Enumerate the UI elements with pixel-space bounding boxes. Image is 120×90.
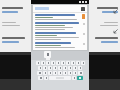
button[interactable]: Key xyxy=(66,61,70,65)
button[interactable] xyxy=(33,21,87,31)
button[interactable]: Key xyxy=(43,66,47,70)
button[interactable]: Enter xyxy=(77,76,83,80)
button[interactable]: Key xyxy=(56,61,60,65)
button[interactable]: Key xyxy=(53,66,57,70)
button[interactable]: Bookmark xyxy=(82,14,85,19)
button[interactable]: Key xyxy=(53,71,57,75)
button[interactable]: Key xyxy=(48,71,52,75)
button[interactable]: Options xyxy=(33,5,87,12)
button[interactable]: Key xyxy=(73,71,77,75)
button[interactable]: Key xyxy=(73,66,77,70)
button[interactable] xyxy=(33,41,87,49)
button[interactable]: Key xyxy=(81,61,85,65)
button[interactable]: Key xyxy=(63,71,67,75)
button[interactable]: Shift xyxy=(37,71,42,75)
button[interactable]: Period xyxy=(72,76,76,80)
button[interactable]: Key xyxy=(58,71,62,75)
button[interactable]: Key xyxy=(48,66,52,70)
button[interactable]: Comma xyxy=(44,76,48,80)
button[interactable]: Key xyxy=(36,61,40,65)
button[interactable]: Space xyxy=(49,76,71,80)
button[interactable]: Key xyxy=(41,61,45,65)
button[interactable]: Expand xyxy=(112,8,119,15)
button[interactable]: Symbols xyxy=(38,76,43,80)
button[interactable]: Key xyxy=(51,61,55,65)
button[interactable]: Options xyxy=(81,7,85,11)
button[interactable]: Key xyxy=(43,71,47,75)
button[interactable]: Key xyxy=(63,66,67,70)
button[interactable]: Expand xyxy=(112,28,119,35)
button[interactable]: Key xyxy=(46,61,50,65)
button[interactable]: Key xyxy=(68,71,72,75)
button[interactable]: Backspace xyxy=(78,71,83,75)
button[interactable]: Key xyxy=(38,66,42,70)
button[interactable]: Key xyxy=(78,66,82,70)
button[interactable]: Key xyxy=(71,61,75,65)
button[interactable]: Key xyxy=(61,61,65,65)
button[interactable]: Key xyxy=(76,61,80,65)
button[interactable] xyxy=(33,31,87,41)
button[interactable]: Key xyxy=(58,66,62,70)
button[interactable]: Key xyxy=(68,66,72,70)
button[interactable]: Bookmark xyxy=(33,13,87,21)
